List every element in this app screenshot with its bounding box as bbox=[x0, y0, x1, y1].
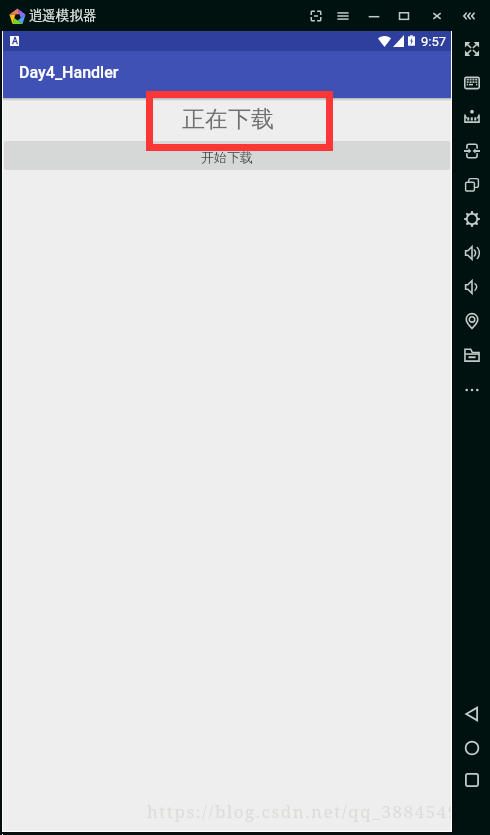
button[interactable]: Multi window bbox=[453, 168, 490, 202]
button[interactable]: Fullscreen bbox=[453, 32, 490, 66]
staticText: 正在下载 bbox=[182, 105, 274, 134]
button[interactable]: 开始下载 bbox=[4, 141, 450, 170]
button[interactable]: Screenshot bbox=[301, 0, 331, 31]
button[interactable]: Location bbox=[453, 304, 490, 338]
button[interactable]: Close bbox=[422, 0, 452, 31]
button[interactable]: Volume up bbox=[453, 236, 490, 270]
button[interactable]: Back bbox=[453, 697, 490, 731]
button[interactable]: Install APK bbox=[453, 100, 490, 134]
staticText: 逍遥模拟器 bbox=[29, 7, 97, 24]
button[interactable]: Volume down bbox=[453, 270, 490, 304]
staticText: https://blog.csdn.net/qq_38845493 bbox=[147, 800, 451, 823]
button[interactable]: More bbox=[453, 373, 490, 407]
button[interactable]: Minimize bbox=[359, 0, 389, 31]
button[interactable]: Menu bbox=[328, 0, 358, 31]
button[interactable]: Maximize bbox=[389, 0, 419, 31]
button[interactable]: Settings bbox=[453, 202, 490, 236]
staticText: A bbox=[12, 36, 18, 46]
button[interactable]: Keyboard bbox=[453, 66, 490, 100]
button[interactable]: Recents bbox=[453, 763, 490, 797]
button[interactable]: Shared folder bbox=[453, 338, 490, 372]
staticText: 开始下载 bbox=[201, 149, 253, 165]
button[interactable]: Home bbox=[453, 731, 490, 765]
staticText: 9:57 bbox=[421, 34, 447, 49]
staticText: Day4_Handler bbox=[19, 63, 119, 82]
button[interactable]: Shared keyboard bbox=[453, 134, 490, 168]
button[interactable]: Collapse toolbar bbox=[454, 0, 484, 31]
